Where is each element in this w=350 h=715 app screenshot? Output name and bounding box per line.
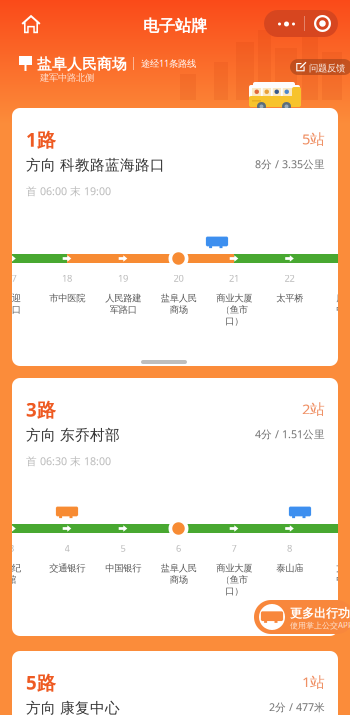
staticText: 方向 科教路蓝海路口 xyxy=(26,156,165,174)
staticText: 2分 / 477米 xyxy=(269,700,325,714)
staticText: 22 xyxy=(284,272,294,284)
staticText: 4分 / 1.51公里 xyxy=(255,427,325,441)
staticText: 首 06:30 末 18:00 xyxy=(26,454,111,468)
staticText: 5 xyxy=(120,542,125,554)
staticText: 盐阜人民 商场 xyxy=(160,292,196,315)
staticText: 交通银行 xyxy=(49,562,85,574)
button[interactable]: 5路 xyxy=(12,651,338,715)
staticText: 1站 xyxy=(302,672,325,691)
staticText: 6 xyxy=(176,542,181,554)
staticText: 8 xyxy=(287,542,292,554)
staticText: 1路 xyxy=(26,127,56,152)
staticText: 2站 xyxy=(302,399,325,418)
staticText: 方向 康复中心 xyxy=(26,699,120,715)
staticText: 康复 中心 xyxy=(336,292,350,315)
staticText: 建军中路北侧 xyxy=(40,72,94,83)
staticText: 市中医院 xyxy=(49,292,85,304)
staticText: 文路 中学 xyxy=(336,562,350,585)
staticText: 5路 xyxy=(26,670,56,695)
button[interactable]: 问题反馈 xyxy=(290,59,350,75)
staticText: 方向 东乔村部 xyxy=(26,426,120,444)
staticText: 电子站牌 xyxy=(143,16,207,36)
staticText: 3路 xyxy=(26,397,56,422)
staticText: 5站 xyxy=(302,129,325,148)
staticText: 4 xyxy=(64,542,69,554)
staticText: 人民路建 军路口 xyxy=(105,292,141,315)
staticText: 18 xyxy=(62,272,72,284)
staticText: 路迎 路口 xyxy=(2,292,20,315)
staticText: 盐阜人民 商场 xyxy=(160,562,196,585)
staticText: 商业大厦 （鱼市 口） xyxy=(216,292,252,327)
button[interactable]: Home xyxy=(20,13,42,35)
staticText: 19 xyxy=(118,272,128,284)
staticText: 8分 / 3.35公里 xyxy=(255,157,325,171)
staticText: 泰山庙 xyxy=(276,562,303,574)
staticText: 商业大厦 （鱼市 口） xyxy=(216,562,252,597)
staticText: 使用掌上公交APP xyxy=(290,620,350,631)
staticText: 问题反馈 xyxy=(309,62,345,74)
staticText: 3 xyxy=(9,542,14,554)
staticText: 首 06:00 末 19:00 xyxy=(26,184,111,198)
button[interactable]: More xyxy=(264,10,338,37)
staticText: 7 xyxy=(231,542,236,554)
staticText: 更多出行功能 xyxy=(290,606,350,621)
staticText: 21 xyxy=(229,272,239,284)
staticText: 途经11条路线 xyxy=(141,57,196,69)
staticText: 中国银行 xyxy=(105,562,141,574)
staticText: 17 xyxy=(6,272,16,284)
button[interactable]: 更多出行功能 xyxy=(254,600,350,634)
button[interactable]: 1路 xyxy=(12,108,338,366)
staticText: 盐阜人民商场 xyxy=(37,55,127,73)
button[interactable]: 3路 xyxy=(12,378,338,636)
staticText: 20 xyxy=(173,272,183,284)
staticText: 太平桥 xyxy=(276,292,303,304)
staticText: 军纪 馆 xyxy=(2,562,20,585)
